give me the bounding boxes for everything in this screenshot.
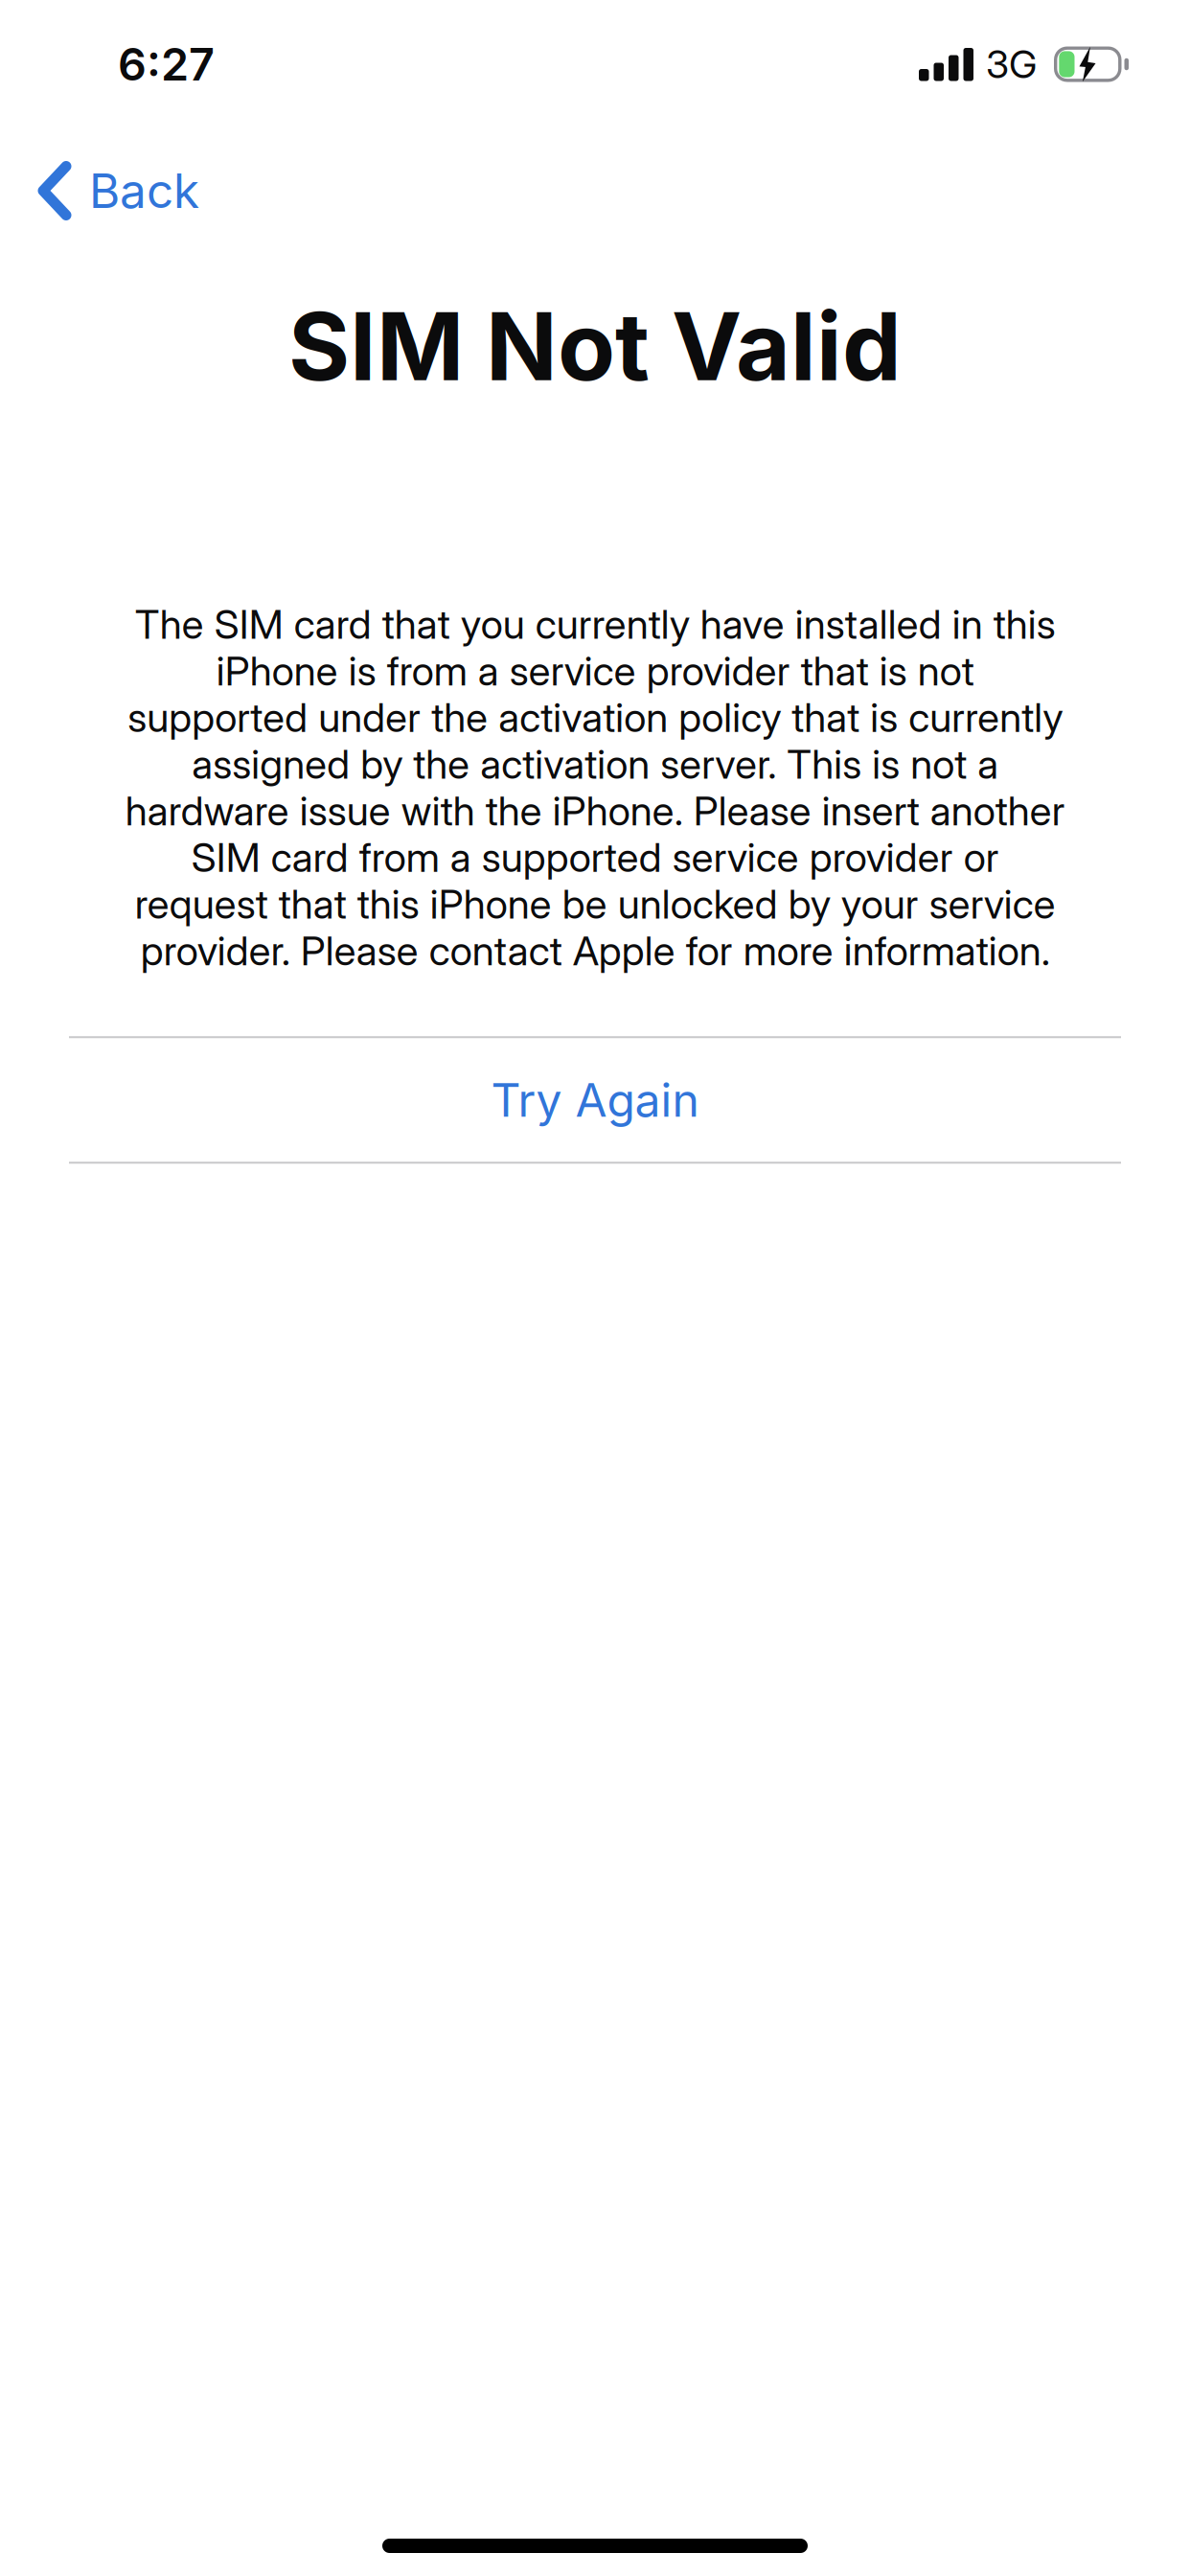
staticText: SIM Not Valid bbox=[288, 289, 902, 403]
button[interactable]: Try Again bbox=[69, 1038, 1121, 1162]
staticText: 6:27 bbox=[118, 37, 215, 91]
staticText: 3G bbox=[986, 41, 1037, 87]
staticText: Back bbox=[89, 162, 199, 219]
staticText: The SIM card that you currently have ins… bbox=[125, 600, 1065, 975]
staticText: Try Again bbox=[491, 1072, 699, 1128]
button[interactable]: Back bbox=[0, 154, 1190, 227]
